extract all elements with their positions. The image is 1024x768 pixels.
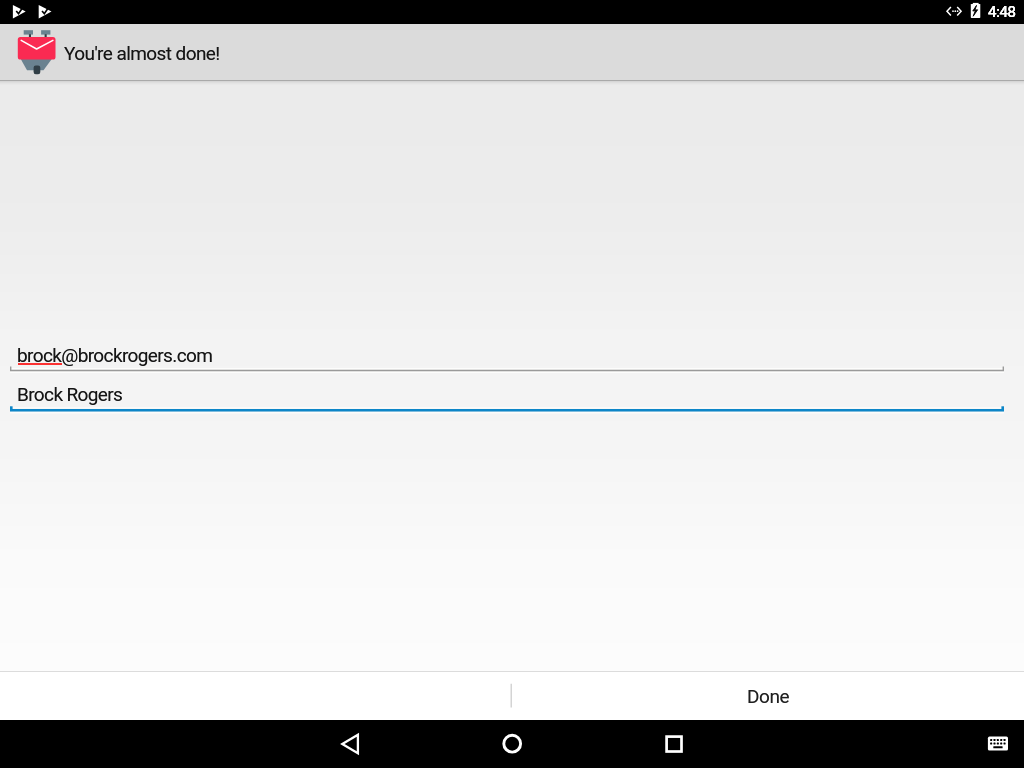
staticText: brock@brockrogers.com xyxy=(17,344,213,366)
button[interactable]: Switch keyboard xyxy=(974,720,1022,768)
staticText: brock@brockrogers.com xyxy=(17,344,213,366)
staticText: Done xyxy=(747,685,790,707)
staticText: Done xyxy=(747,685,790,707)
staticText: You're almost done! xyxy=(64,42,220,64)
staticText: You're almost done! xyxy=(64,42,220,64)
button[interactable]: brock@brockrogers.com xyxy=(0,344,1024,382)
staticText: Brock Rogers xyxy=(17,383,123,405)
button[interactable]: Done xyxy=(512,671,1024,720)
staticText: Brock Rogers xyxy=(17,383,123,405)
button[interactable]: Home xyxy=(488,720,536,768)
button[interactable]: Back xyxy=(326,720,374,768)
staticText: 4:48 xyxy=(988,3,1016,21)
staticText: 4:48 xyxy=(988,3,1016,21)
button[interactable]: Brock Rogers xyxy=(0,383,1024,421)
button[interactable]: Recent apps xyxy=(650,720,698,768)
